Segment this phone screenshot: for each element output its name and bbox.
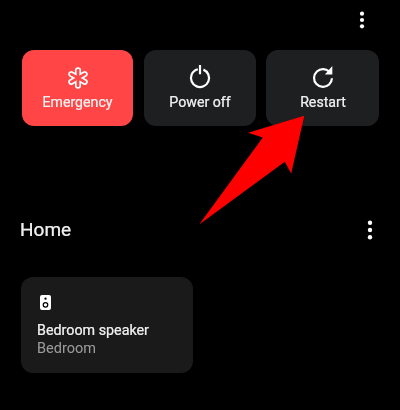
staticText: Bedroom <box>37 340 96 357</box>
button[interactable]: Home settings <box>353 211 386 249</box>
button[interactable]: Restart <box>266 50 379 126</box>
staticText: Power off <box>169 94 231 111</box>
staticText: Restart <box>300 94 346 111</box>
button[interactable]: Emergency <box>22 50 133 126</box>
staticText: Emergency <box>42 94 113 111</box>
button[interactable]: Power off <box>144 50 256 126</box>
button[interactable]: More options <box>345 1 378 39</box>
staticText: Home <box>20 218 72 240</box>
button[interactable]: Home <box>12 212 82 246</box>
button[interactable]: Bedroom speaker <box>21 277 193 373</box>
staticText: Bedroom speaker <box>37 322 149 339</box>
